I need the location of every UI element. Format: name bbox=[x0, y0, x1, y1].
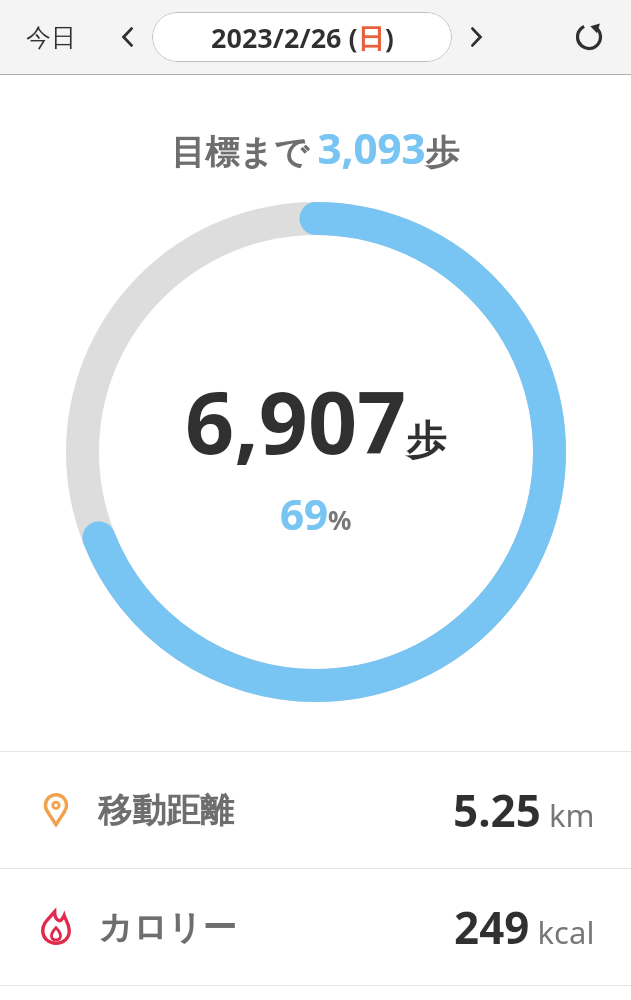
staticText: 2023/2/26 (日) bbox=[211, 19, 394, 56]
button[interactable]: Previous day bbox=[108, 17, 148, 57]
staticText: 6,907歩 bbox=[185, 362, 447, 479]
button[interactable]: 2023/2/26 (日) bbox=[152, 12, 452, 62]
staticText: 移動距離 bbox=[98, 789, 234, 832]
button[interactable]: 今日 bbox=[18, 16, 84, 59]
button[interactable]: Next day bbox=[456, 17, 496, 57]
button[interactable]: Refresh bbox=[563, 11, 615, 63]
staticText: 5.25 km bbox=[453, 780, 595, 840]
staticText: 目標まで 3,093歩 bbox=[171, 119, 460, 176]
button[interactable]: 移動距離 bbox=[0, 752, 631, 868]
button[interactable]: カロリー bbox=[0, 869, 631, 985]
staticText: 249 kcal bbox=[454, 897, 595, 957]
staticText: 今日 bbox=[26, 22, 76, 53]
staticText: カロリー bbox=[98, 906, 237, 949]
staticText: 69% bbox=[280, 485, 352, 542]
